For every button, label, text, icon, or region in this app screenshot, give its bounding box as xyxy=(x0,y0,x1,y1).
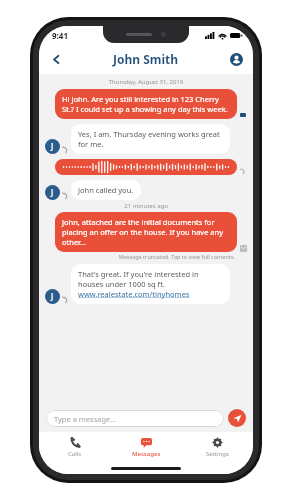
staticText: John, attached are the initial documents… xyxy=(62,217,230,247)
button[interactable]: John called you. xyxy=(71,180,141,200)
staticText: J xyxy=(51,291,54,302)
button[interactable]: John, attached are the initial documents… xyxy=(55,212,237,252)
button[interactable]: Hi John. Are you still interested in 123… xyxy=(55,89,237,119)
staticText: That's great. If you're interested in ho… xyxy=(78,269,223,289)
staticText: John Smith xyxy=(113,51,179,67)
staticText: 21 minutes ago xyxy=(45,202,247,210)
button[interactable]: Settings xyxy=(182,432,253,462)
button[interactable]: www.realestate.com/tinyhomes xyxy=(78,289,190,299)
staticText: J xyxy=(51,187,54,198)
staticText: 9:41 xyxy=(52,30,68,41)
button[interactable]: Send xyxy=(228,409,246,427)
staticText: J xyxy=(51,141,54,152)
staticText: Settings xyxy=(206,450,229,458)
staticText: Message truncated. Tap to view full cont… xyxy=(45,253,235,260)
button[interactable]: Profile xyxy=(226,49,246,69)
staticText: Hi John. Are you still interested in 123… xyxy=(62,94,230,114)
staticText: John called you. xyxy=(78,185,134,195)
button[interactable]: Messages xyxy=(111,432,182,462)
staticText: Type a message… xyxy=(54,414,117,424)
button[interactable]: Back xyxy=(45,48,67,70)
button[interactable]: Yes, I am. Thursday evening works great … xyxy=(71,124,230,154)
staticText: Calls xyxy=(68,450,82,458)
button[interactable]: That's great. If you're interested in ho… xyxy=(71,264,230,304)
staticText: Yes, I am. Thursday evening works great … xyxy=(78,129,223,149)
button[interactable]: Type a message… xyxy=(46,410,224,427)
button[interactable]: Play voice message xyxy=(55,159,237,175)
button[interactable]: Calls xyxy=(39,432,111,462)
staticText: Messages xyxy=(132,450,161,458)
staticText: Thursday, August 31, 2019 xyxy=(45,78,247,86)
